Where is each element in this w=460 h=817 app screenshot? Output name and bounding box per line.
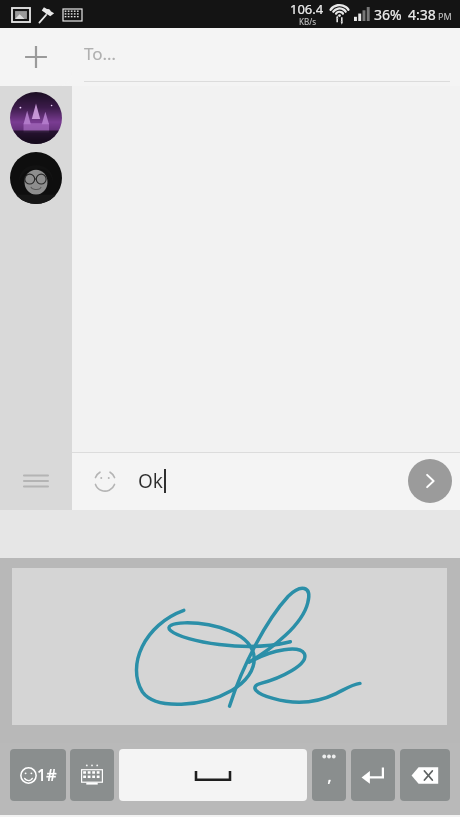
staticText: Ok — [138, 468, 163, 494]
button[interactable]: Contact 2 — [10, 152, 62, 204]
staticText: To… — [84, 42, 116, 65]
button[interactable]: Comma — [312, 749, 346, 801]
staticText: KB/s — [299, 16, 316, 26]
button[interactable]: To… — [84, 28, 450, 86]
staticText: 4:38 — [408, 5, 436, 24]
button[interactable]: Space — [119, 749, 307, 801]
staticText: 36% — [374, 5, 402, 24]
button[interactable] — [0, 558, 460, 743]
staticText: , — [327, 764, 332, 787]
button[interactable]: Symbols — [10, 749, 66, 801]
button[interactable]: Switch keyboard — [70, 749, 114, 801]
button[interactable]: Send — [408, 459, 452, 503]
staticText: 1# — [37, 764, 57, 786]
button[interactable]: Add recipient — [0, 28, 72, 86]
button[interactable]: Menu — [0, 452, 72, 510]
staticText: PM — [438, 10, 452, 22]
button[interactable]: Contact 1 — [10, 92, 62, 144]
staticText: 106.4 — [290, 0, 324, 18]
button[interactable]: Backspace — [400, 749, 450, 801]
button[interactable]: Enter — [351, 749, 395, 801]
button[interactable]: Emoji — [92, 468, 118, 494]
